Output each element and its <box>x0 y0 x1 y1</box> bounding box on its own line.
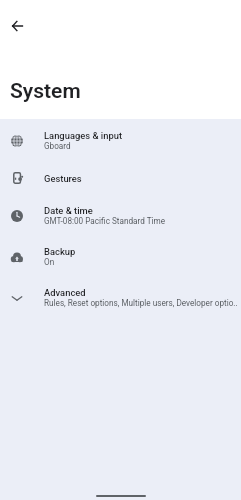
staticText: On <box>44 257 55 267</box>
button[interactable]: Backup <box>0 236 241 277</box>
staticText: Backup <box>44 246 76 257</box>
staticText: Advanced <box>44 287 86 298</box>
staticText: System <box>10 79 81 104</box>
button[interactable]: Gestures <box>0 161 241 195</box>
button[interactable]: Languages & input <box>0 120 241 161</box>
staticText: Gboard <box>44 141 71 151</box>
staticText: Rules, Reset options, Multiple users, De… <box>44 298 238 308</box>
staticText: Languages & input <box>44 130 123 141</box>
button[interactable]: Back <box>6 14 29 37</box>
staticText: Gestures <box>44 173 82 184</box>
button[interactable]: Advanced <box>0 277 241 318</box>
staticText: GMT-08:00 Pacific Standard Time <box>44 216 166 226</box>
staticText: Date & time <box>44 205 93 216</box>
button[interactable]: Date & time <box>0 195 241 236</box>
